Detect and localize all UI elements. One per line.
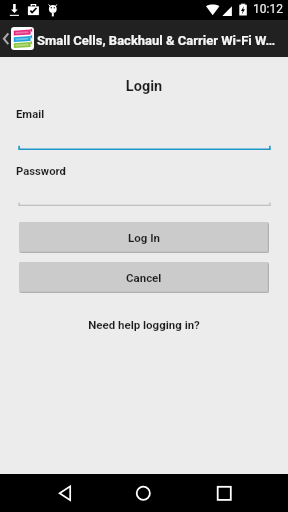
- button[interactable]: Email input: [0, 144, 288, 154]
- button[interactable]: Navigate up: [0, 20, 11, 57]
- button[interactable]: Recent apps: [202, 474, 247, 512]
- button[interactable]: Password input: [0, 200, 288, 210]
- button[interactable]: Back: [45, 474, 90, 512]
- staticText: Email: [16, 108, 45, 121]
- button[interactable]: Log In: [19, 222, 269, 253]
- staticText: 10:12: [253, 2, 283, 16]
- button[interactable]: Home: [121, 474, 166, 512]
- button[interactable]: App logo: [11, 27, 34, 50]
- staticText: Login: [0, 78, 288, 95]
- button[interactable]: Cancel: [19, 262, 269, 293]
- staticText: Log In: [128, 231, 160, 244]
- staticText: Password: [16, 165, 66, 178]
- button[interactable]: Need help logging in?: [0, 318, 288, 331]
- staticText: Small Cells, Backhaul & Carrier Wi-Fi W…: [37, 33, 288, 48]
- staticText: Cancel: [126, 271, 162, 284]
